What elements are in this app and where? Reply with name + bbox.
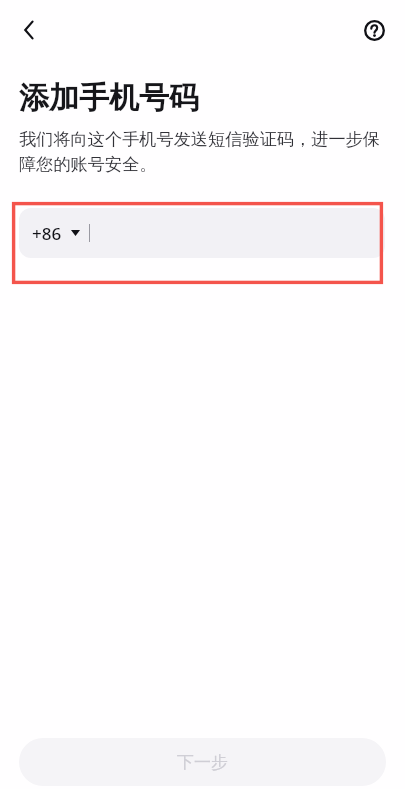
button[interactable]: Back [7, 8, 51, 52]
staticText: 下一步 [177, 752, 228, 773]
staticText: 添加手机号码 [19, 79, 199, 117]
staticText: 我们将向这个手机号发送短信验证码，进一步保障您的账号安全。 [19, 128, 391, 175]
button[interactable]: +86 [19, 208, 89, 258]
button[interactable]: 下一步 [19, 738, 386, 786]
button[interactable]: +86 [19, 208, 385, 258]
button[interactable]: Help [352, 8, 396, 52]
staticText: +86 [32, 222, 62, 245]
